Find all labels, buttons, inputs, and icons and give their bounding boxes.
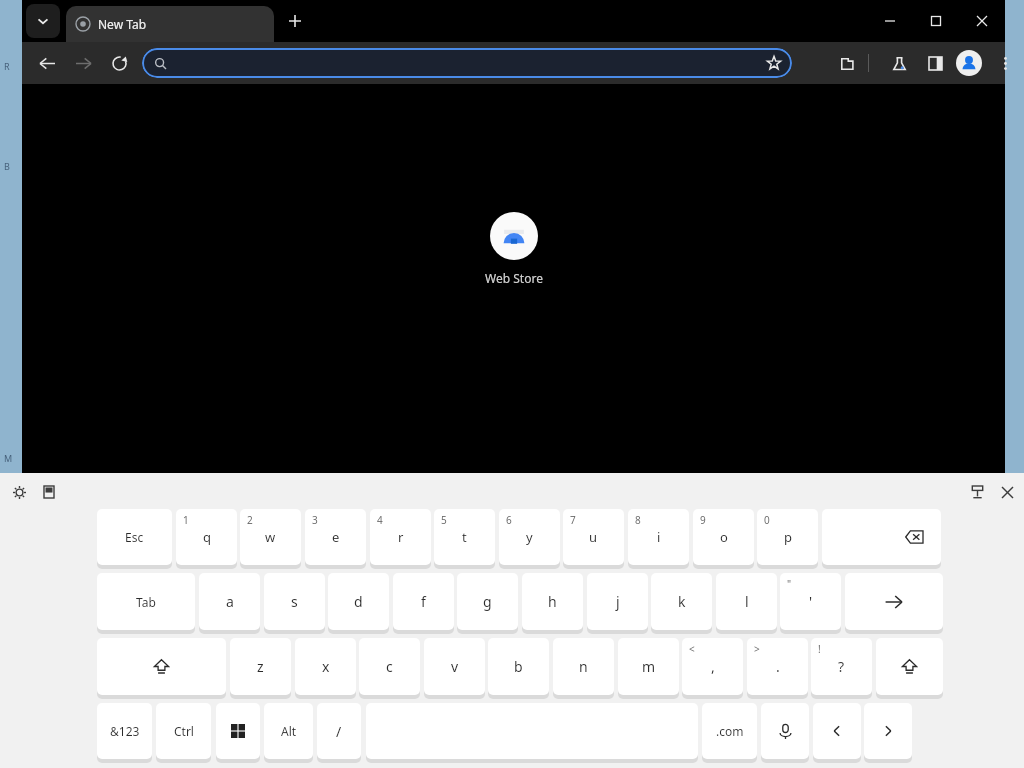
button[interactable]: l <box>716 573 777 630</box>
button[interactable]: Close <box>959 0 1005 42</box>
button[interactable]: New Tab <box>66 6 274 42</box>
button[interactable]: Tab <box>97 573 195 630</box>
button[interactable]: k <box>651 573 712 630</box>
staticText: h <box>548 592 557 611</box>
button[interactable]: Forward <box>68 48 98 78</box>
button[interactable]: a <box>199 573 260 630</box>
staticText: > <box>754 642 760 656</box>
staticText: y <box>526 528 533 546</box>
staticText: 5 <box>441 513 447 527</box>
button[interactable]: / <box>317 703 361 759</box>
button[interactable]: Backspace <box>822 509 941 565</box>
staticText: n <box>579 657 588 676</box>
button[interactable]: 1 <box>176 509 237 565</box>
staticText: g <box>483 592 492 611</box>
staticText: c <box>386 657 393 676</box>
button[interactable]: More options <box>990 48 1020 78</box>
button[interactable]: b <box>488 638 549 695</box>
staticText: o <box>720 528 728 546</box>
staticText: l <box>745 592 749 611</box>
staticText: f <box>421 592 426 611</box>
button[interactable]: m <box>618 638 679 695</box>
staticText: s <box>291 592 298 611</box>
button[interactable]: Minimize <box>867 0 913 42</box>
button[interactable]: d <box>328 573 389 630</box>
button[interactable]: Esc <box>97 509 172 565</box>
staticText: i <box>657 528 661 546</box>
button[interactable]: 3 <box>305 509 366 565</box>
staticText: / <box>336 722 342 741</box>
button[interactable]: g <box>457 573 518 630</box>
staticText: 9 <box>700 513 706 527</box>
button[interactable]: j <box>587 573 648 630</box>
button[interactable]: Side panel <box>920 48 950 78</box>
button[interactable]: .com <box>702 703 757 759</box>
button[interactable]: v <box>424 638 485 695</box>
button[interactable]: Maximize <box>913 0 959 42</box>
staticText: 7 <box>570 513 576 527</box>
button[interactable]: Back <box>32 48 62 78</box>
button[interactable]: Bookmark <box>762 51 786 75</box>
staticText: t <box>462 528 467 546</box>
button[interactable]: &123 <box>97 703 152 759</box>
button[interactable]: " <box>780 573 841 630</box>
staticText: x <box>322 657 330 676</box>
button[interactable]: c <box>359 638 420 695</box>
staticText: v <box>451 657 459 676</box>
staticText: Ctrl <box>174 723 194 739</box>
button[interactable]: Bookmark <box>142 48 792 78</box>
button[interactable]: 5 <box>434 509 495 565</box>
staticText: < <box>689 642 695 656</box>
button[interactable]: Left <box>813 703 861 759</box>
button[interactable]: Keyboard layout <box>38 481 60 503</box>
staticText: &123 <box>110 723 140 739</box>
staticText: B <box>4 160 10 172</box>
button[interactable]: Extensions <box>832 48 862 78</box>
button[interactable]: ! <box>811 638 872 695</box>
button[interactable]: z <box>230 638 291 695</box>
staticText: r <box>398 528 404 546</box>
staticText: w <box>265 528 276 546</box>
button[interactable]: 7 <box>563 509 624 565</box>
button[interactable]: 8 <box>628 509 689 565</box>
button[interactable]: New tab <box>282 8 308 34</box>
button[interactable]: s <box>264 573 325 630</box>
button[interactable]: Labs <box>884 48 914 78</box>
button[interactable]: h <box>522 573 583 630</box>
button[interactable]: Windows <box>216 703 260 759</box>
button[interactable]: Voice input <box>761 703 809 759</box>
button[interactable]: > <box>747 638 808 695</box>
staticText: Web Store <box>485 270 543 286</box>
button[interactable]: 6 <box>499 509 560 565</box>
button[interactable]: Enter <box>845 573 943 630</box>
button[interactable]: < <box>682 638 743 695</box>
button[interactable]: Reload <box>104 48 134 78</box>
staticText: ' <box>809 592 813 611</box>
button[interactable]: 0 <box>757 509 818 565</box>
staticText: d <box>354 592 363 611</box>
button[interactable]: Ctrl <box>156 703 211 759</box>
staticText: Tab <box>136 594 156 610</box>
button[interactable]: Search tabs <box>26 4 60 38</box>
staticText: p <box>784 528 792 546</box>
staticText: z <box>257 657 264 676</box>
button[interactable]: Shift <box>97 638 226 695</box>
button[interactable]: f <box>393 573 454 630</box>
button[interactable]: Shift <box>876 638 943 695</box>
button[interactable]: n <box>553 638 614 695</box>
button[interactable]: Close keyboard <box>996 481 1018 503</box>
button[interactable]: Keyboard settings <box>8 481 30 503</box>
button[interactable]: x <box>295 638 356 695</box>
button[interactable]: Right <box>864 703 912 759</box>
staticText: u <box>589 528 598 546</box>
button[interactable]: Alt <box>264 703 313 759</box>
button[interactable]: 4 <box>370 509 431 565</box>
button[interactable]: Profile <box>956 50 982 76</box>
button[interactable]: Dock keyboard <box>966 481 988 503</box>
button[interactable] <box>490 212 538 260</box>
staticText: 1 <box>183 513 189 527</box>
button[interactable]: 2 <box>240 509 301 565</box>
button[interactable]: 9 <box>693 509 754 565</box>
